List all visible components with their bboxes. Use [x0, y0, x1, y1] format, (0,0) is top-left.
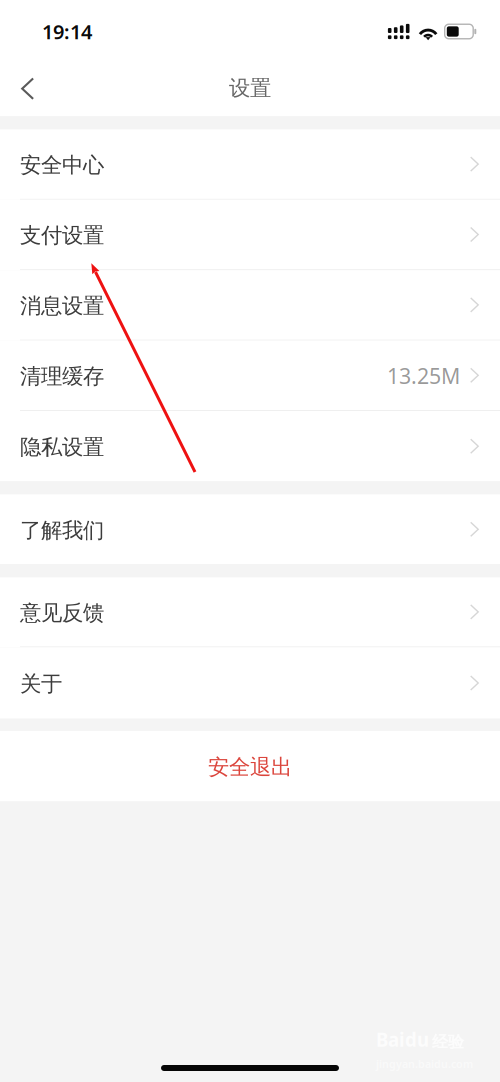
staticText: 了解我们: [20, 517, 104, 543]
button[interactable]: 了解我们: [0, 494, 500, 564]
staticText: 19:14: [42, 18, 92, 45]
staticText: 关于: [20, 671, 62, 697]
staticText: 安全退出: [208, 754, 292, 780]
button[interactable]: 支付设置: [0, 200, 500, 270]
staticText: 清理缓存: [20, 363, 104, 389]
staticText: 意见反馈: [20, 600, 104, 626]
staticText: 13.25M: [387, 362, 460, 390]
button[interactable]: Back: [0, 64, 50, 110]
button[interactable]: 清理缓存: [0, 341, 500, 411]
staticText: 支付设置: [20, 222, 104, 249]
staticText: Baidu: [376, 1027, 429, 1052]
staticText: 设置: [229, 75, 271, 101]
staticText: 消息设置: [20, 293, 104, 319]
button[interactable]: 安全中心: [0, 129, 500, 200]
button[interactable]: 关于: [0, 647, 500, 719]
staticText: 安全中心: [20, 152, 104, 178]
button[interactable]: 消息设置: [0, 270, 500, 341]
button[interactable]: 隐私设置: [0, 411, 500, 481]
button[interactable]: 安全退出: [0, 731, 500, 801]
staticText: 隐私设置: [20, 434, 104, 460]
staticText: 经验: [432, 1032, 464, 1052]
button[interactable]: 意见反馈: [0, 577, 500, 647]
